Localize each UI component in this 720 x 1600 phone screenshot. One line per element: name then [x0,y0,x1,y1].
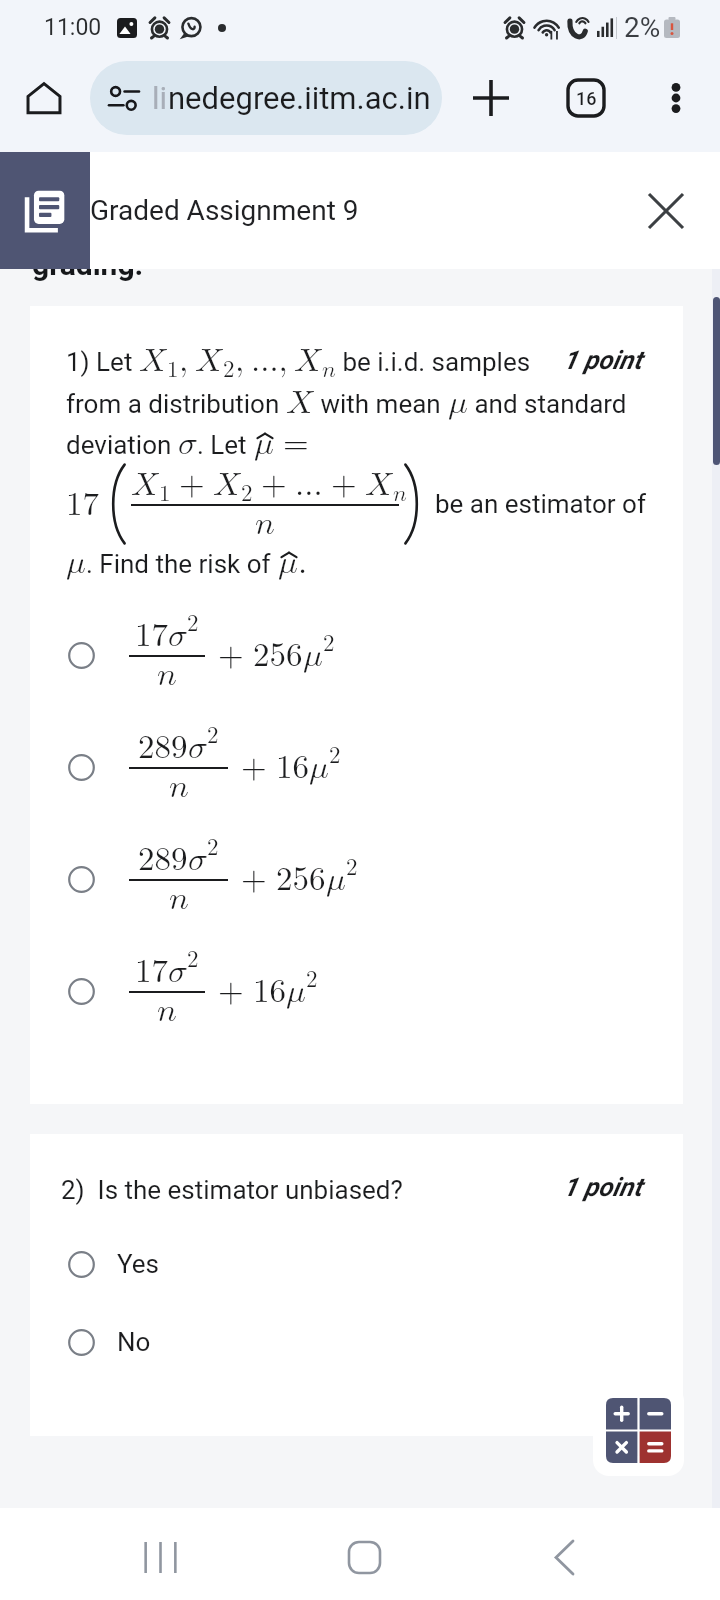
staticText: 2 [329,744,341,767]
staticText: 𝜇 [254,427,274,460]
staticText: + [241,751,267,784]
staticText: 𝑋 [139,344,167,377]
staticText: 256 [253,639,303,672]
staticText: 𝜇 [278,546,298,579]
staticText: 1) Let [66,347,139,377]
staticText: grading. [32,247,144,282]
staticText: 2 [187,612,199,635]
staticText: and standard [468,389,627,419]
staticText: + [179,468,205,501]
staticText: 𝜎 [178,427,197,460]
staticText: li [152,80,168,116]
staticText: + [218,975,244,1008]
staticText: 𝜇 [303,639,323,672]
staticText: 17 [135,619,168,652]
staticText: . Let [197,430,254,460]
staticText: 𝜇 [286,975,306,1008]
staticText: 𝑋 [294,344,322,377]
staticText: 𝜎 [168,955,187,988]
staticText: 1 point [563,345,642,375]
button[interactable]: Home [16,70,72,126]
staticText: 𝑛 [157,658,177,691]
staticText: 𝜎 [188,843,207,876]
staticText: from a distribution [66,389,286,419]
staticText: 16 [576,88,597,109]
staticText: 𝜇 [309,751,329,784]
staticText: 2 [346,856,358,879]
staticText: 𝑛 [393,482,399,505]
staticText: 2) Is the estimator unbiased? [61,1175,403,1205]
staticText: + [261,468,287,501]
staticText: 𝑛 [169,882,189,915]
staticText: 𝜎 [188,731,207,764]
staticText: , [235,344,245,377]
staticText: + [218,639,244,672]
staticText: 16 [253,975,286,1008]
button[interactable]: New tab [460,67,522,129]
button[interactable]: Calculator [593,1385,684,1476]
staticText: . [298,546,308,579]
staticText: 𝜇 [326,863,346,896]
button[interactable]: Back [517,1508,609,1600]
staticText: 1 point [563,1172,642,1202]
staticText: be i.i.d. samples [336,347,531,377]
staticText: + [331,468,357,501]
staticText: 2 [207,724,219,747]
staticText: 𝑋 [195,344,223,377]
staticText: … [295,468,323,501]
staticText: + [241,863,267,896]
staticText: 𝜇 [448,386,468,419]
staticText: deviation [66,430,178,460]
button[interactable]: No [68,1314,368,1370]
button[interactable]: Assignment menu [0,152,90,269]
button[interactable]: Recent apps [111,1508,203,1600]
button[interactable]: 289 [66,823,626,935]
button[interactable]: 17 [66,935,626,1047]
staticText: No [117,1327,151,1357]
staticText: 289 [138,843,188,876]
staticText: 11:00 [44,14,102,41]
staticText: = [283,427,309,460]
staticText: 289 [138,731,188,764]
staticText: 2 [323,632,335,655]
staticText: 2% [624,11,661,44]
staticText: 2 [306,968,318,991]
button[interactable]: li [90,61,442,135]
staticText: 17 [66,488,99,521]
staticText: Graded Assignment 9 [90,194,359,227]
staticText: 𝑋 [365,468,393,501]
staticText: …, [251,344,288,377]
staticText: 𝑛 [255,507,275,540]
staticText: 𝑛 [157,994,177,1027]
staticText: 1 [167,358,179,381]
staticText: Yes [117,1249,159,1279]
staticText: 𝑋 [131,468,159,501]
staticText: 17 [135,955,168,988]
staticText: with mean [314,389,448,419]
staticText: 2 [187,948,199,971]
staticText: 𝑛 [322,358,336,381]
staticText: 𝑋 [213,468,241,501]
button[interactable]: 289 [66,711,626,823]
button[interactable]: Home [314,1508,406,1600]
staticText: 256 [276,863,326,896]
staticText: 𝜇 [66,546,86,579]
button[interactable]: Close [636,181,696,241]
staticText: 2 [223,358,235,381]
staticText: 𝑋 [286,386,314,419]
button[interactable]: 17 [66,599,626,711]
staticText: 𝑛 [169,770,189,803]
staticText: 16 [276,751,309,784]
staticText: nedegree.iitm.ac.in [168,80,431,116]
staticText: 2 [241,482,253,505]
button[interactable]: More options [646,68,706,128]
button[interactable]: Yes [68,1236,368,1292]
staticText: be an estimator of [435,489,646,519]
staticText: 2 [207,836,219,859]
staticText: , [179,344,189,377]
button[interactable]: Tabs, 16 open [555,67,617,129]
staticText: . Find the risk of [86,549,278,579]
staticText: 1 [159,482,171,505]
staticText: 𝜎 [168,619,187,652]
